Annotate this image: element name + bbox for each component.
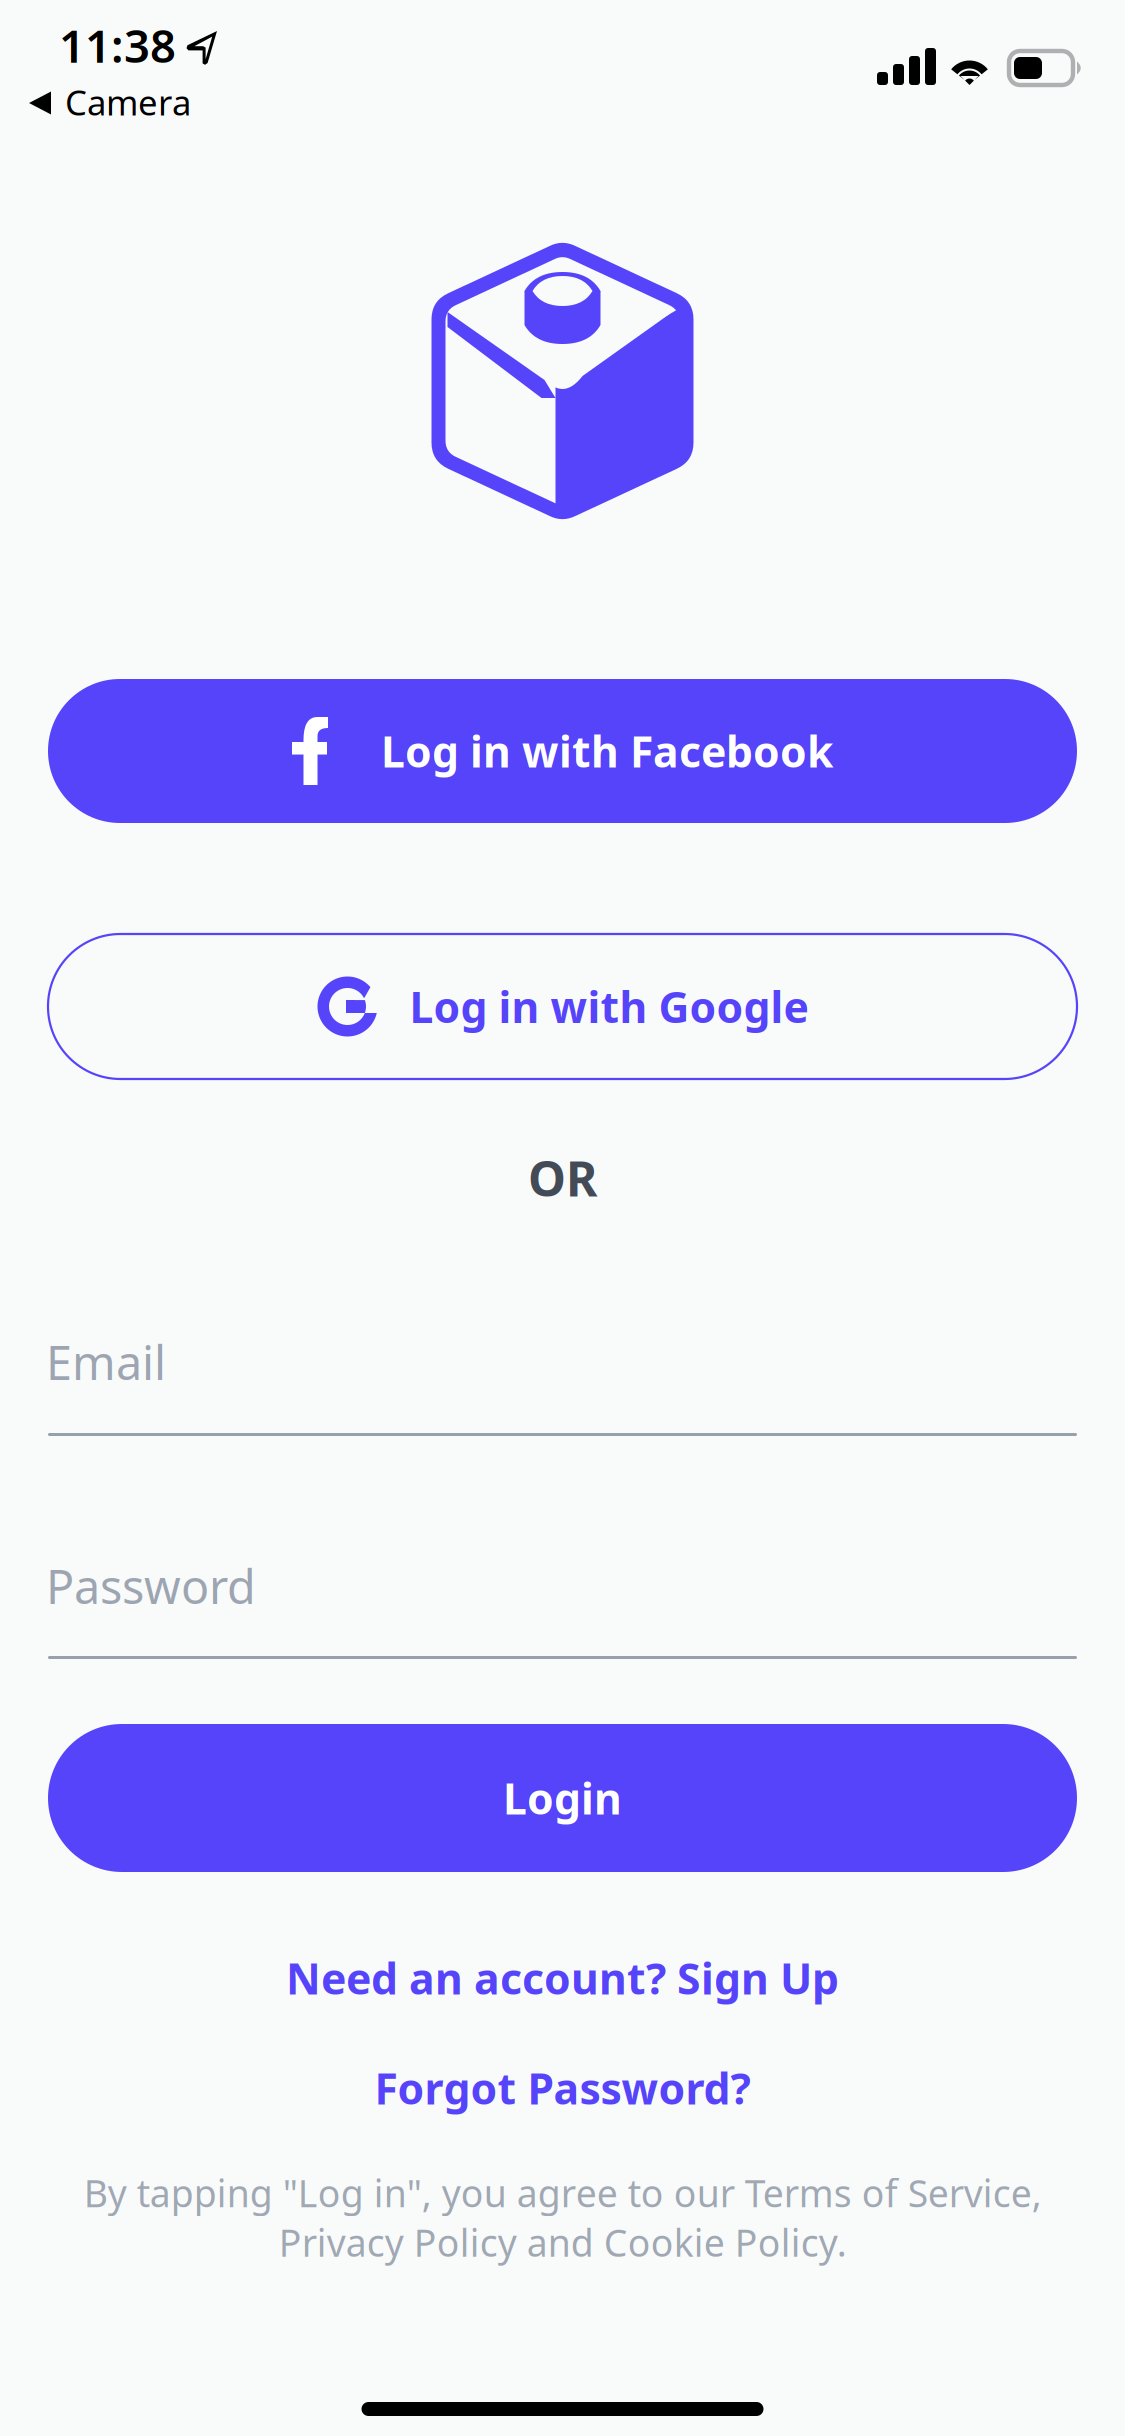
- button[interactable]: Forgot Password?: [0, 2055, 1125, 2121]
- staticText: Password: [46, 1555, 256, 1617]
- button[interactable]: Camera: [29, 81, 191, 125]
- button[interactable]: Log in with Facebook: [48, 679, 1077, 823]
- staticText: OR: [528, 1146, 597, 1210]
- button[interactable]: Log in with Google: [48, 934, 1077, 1079]
- staticText: By tapping "Log in", you agree to our Te…: [83, 2168, 1041, 2267]
- button[interactable]: Login: [48, 1724, 1077, 1872]
- button[interactable]: Need an account? Sign Up: [0, 1945, 1125, 2011]
- staticText: Log in with Facebook: [381, 723, 833, 779]
- staticText: Email: [46, 1331, 166, 1393]
- staticText: Forgot Password?: [374, 2060, 750, 2116]
- staticText: Need an account? Sign Up: [286, 1950, 839, 2006]
- staticText: Log in with Google: [409, 978, 808, 1035]
- staticText: Camera: [65, 79, 191, 125]
- staticText: 11:38: [59, 15, 176, 75]
- staticText: Login: [503, 1770, 622, 1826]
